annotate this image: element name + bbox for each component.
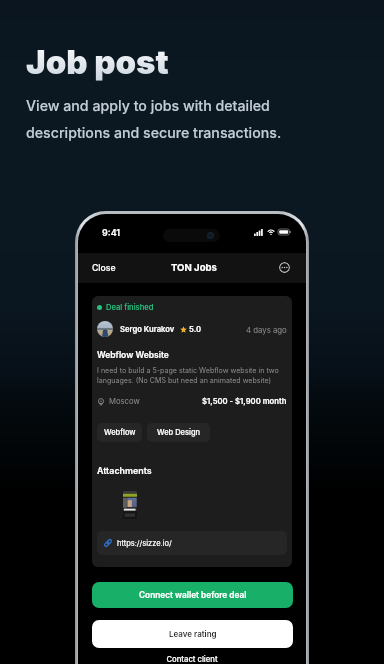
staticText: Attachments [97,465,152,476]
staticText: 5.0 [189,325,201,334]
staticText: Webflow [104,428,136,437]
button[interactable]: Contact client [78,652,306,664]
staticText: Connect wallet before deal [139,590,247,600]
button[interactable]: https://sizze.io/ [97,531,287,555]
staticText: https://sizze.io/ [117,539,172,548]
staticText: Webflow Website [97,350,169,360]
button[interactable]: Leave rating [92,620,293,648]
staticText: Sergo Kurakov [120,325,175,334]
button[interactable]: Attachment preview [123,491,137,519]
staticText: I need to build a 5-page static Webflow … [97,366,279,385]
staticText: Close [92,263,116,274]
button[interactable]: Connect wallet before deal [92,582,293,608]
staticText: Web Design [157,428,201,437]
button[interactable]: Web Design [147,423,210,442]
staticText: View and apply to jobs with detailed des… [26,97,282,142]
staticText: $1,500 - $1,900 month [202,397,287,406]
staticText: Moscow [109,397,140,406]
staticText: 4 days ago [246,325,287,334]
staticText: Deal finished [106,303,154,312]
staticText: Leave rating [169,629,217,639]
button[interactable]: More options [279,262,290,273]
staticText: Job post [26,42,169,82]
button[interactable]: Webflow [97,423,142,442]
staticText: 9:41 [102,227,121,238]
staticText: TON Jobs [171,262,217,274]
button[interactable]: Close [87,258,121,279]
